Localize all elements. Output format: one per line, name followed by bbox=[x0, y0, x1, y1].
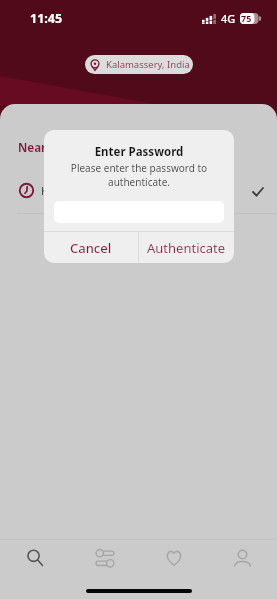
button[interactable]: Favorites bbox=[139, 540, 208, 575]
button[interactable]: Filters bbox=[70, 540, 139, 575]
button[interactable]: Profile bbox=[208, 540, 277, 575]
button[interactable]: Kochi, Kerala bbox=[0, 172, 277, 208]
staticText: Cancel bbox=[70, 239, 112, 257]
button[interactable]: Search bbox=[0, 540, 70, 575]
staticText: 75 bbox=[241, 12, 252, 24]
staticText: Please enter the password to authenticat… bbox=[44, 161, 234, 189]
staticText: Nearby bbox=[18, 140, 60, 156]
staticText: 4G bbox=[221, 11, 236, 26]
staticText: Kochi, Kerala bbox=[41, 183, 108, 198]
staticText: Authenticate bbox=[147, 239, 226, 257]
button[interactable]: Authenticate bbox=[139, 232, 234, 263]
button[interactable]: Cancel bbox=[44, 232, 138, 263]
staticText: 11:45 bbox=[30, 10, 63, 27]
staticText: Kalamassery, India bbox=[106, 58, 190, 71]
staticText: Enter Password bbox=[44, 144, 234, 160]
button[interactable]: Kalamassery, India bbox=[85, 55, 193, 74]
